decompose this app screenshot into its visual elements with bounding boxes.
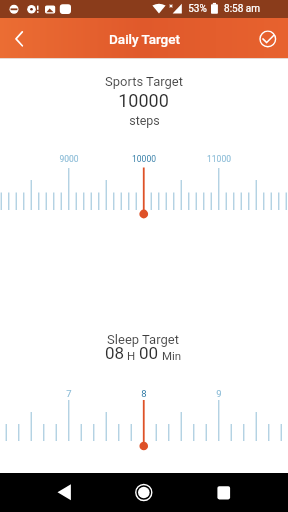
button[interactable] xyxy=(116,473,172,512)
staticText: Sports Target xyxy=(105,74,183,89)
button[interactable] xyxy=(0,150,288,220)
staticText: 10000 xyxy=(132,154,156,164)
staticText: 10000 xyxy=(118,90,169,111)
staticText: 8:58 am xyxy=(224,3,260,15)
staticText: 9000 xyxy=(59,154,79,164)
button[interactable] xyxy=(0,382,288,452)
button[interactable] xyxy=(4,26,32,52)
staticText: Min xyxy=(162,349,182,362)
button[interactable] xyxy=(196,473,252,512)
staticText: H xyxy=(127,349,136,362)
staticText: 8 xyxy=(141,388,147,399)
staticText: 53% xyxy=(188,3,207,15)
staticText: 7 xyxy=(66,388,72,399)
staticText: 08 xyxy=(105,343,125,363)
staticText: Sleep Target xyxy=(107,332,179,347)
staticText: 9 xyxy=(216,388,222,399)
staticText: steps xyxy=(129,113,160,128)
button[interactable] xyxy=(254,25,282,53)
staticText: 11000 xyxy=(207,154,231,164)
staticText: Daily Target xyxy=(109,31,180,47)
staticText: 00 xyxy=(139,343,159,363)
button[interactable] xyxy=(36,473,92,512)
